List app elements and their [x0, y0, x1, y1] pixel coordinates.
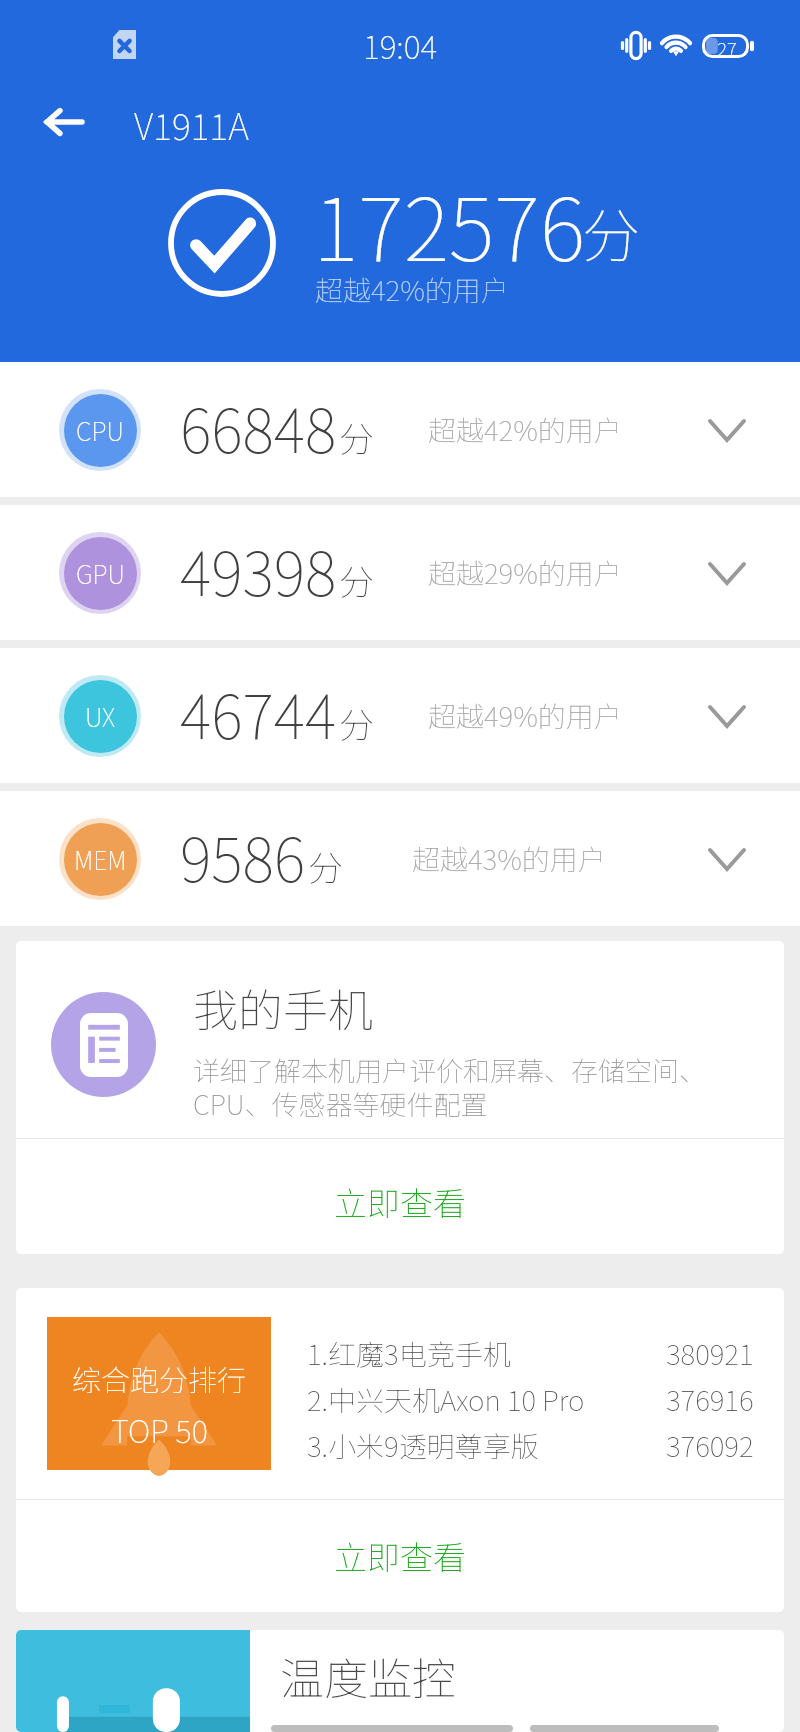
staticText: 380921	[666, 1333, 754, 1374]
staticText: 3.小米9透明尊享版	[307, 1425, 539, 1466]
button[interactable]: Expand	[682, 385, 772, 475]
staticText: 27	[717, 34, 737, 58]
staticText: 376916	[666, 1379, 754, 1420]
staticText: 分	[339, 554, 375, 605]
staticText: 172576	[313, 160, 585, 286]
staticText: 分	[339, 697, 375, 748]
staticText: 19:04	[363, 22, 438, 68]
staticText: MEM	[74, 841, 127, 877]
button[interactable]: MEM	[0, 791, 800, 926]
button[interactable]: 立即查看	[16, 1139, 784, 1254]
staticText: 超越49%的用户	[428, 695, 622, 736]
staticText: 1.红魔3电竞手机	[307, 1333, 511, 1374]
staticText: 分	[582, 190, 641, 274]
button[interactable]: CPU	[0, 362, 800, 497]
staticText: 49398	[180, 526, 337, 613]
staticText: 立即查看	[334, 1178, 466, 1226]
staticText: 46744	[180, 669, 337, 756]
staticText: 9586	[180, 812, 306, 899]
button[interactable]: Expand	[682, 528, 772, 618]
staticText: 超越43%的用户	[412, 838, 606, 879]
button[interactable]: UX	[0, 648, 800, 783]
staticText: V1911A	[134, 98, 249, 150]
button[interactable]: Expand	[682, 814, 772, 904]
staticText: GPU	[76, 555, 125, 591]
staticText: 我的手机	[193, 975, 374, 1040]
staticText: 376092	[666, 1425, 754, 1466]
staticText: CPU	[76, 412, 124, 448]
staticText: 超越42%的用户	[315, 269, 509, 310]
staticText: 分	[308, 840, 344, 891]
button[interactable]: GPU	[0, 505, 800, 640]
staticText: 综合跑分排行	[72, 1357, 247, 1399]
button[interactable]: Back	[23, 82, 103, 162]
staticText: UX	[85, 698, 116, 734]
staticText: 详细了解本机用户评价和屏幕、存储空间、 CPU、传感器等硬件配置	[193, 1050, 706, 1123]
button[interactable]: Expand	[682, 671, 772, 761]
staticText: 超越42%的用户	[428, 409, 622, 450]
staticText: 66848	[180, 383, 337, 470]
staticText: 温度监控	[280, 1644, 456, 1708]
staticText: TOP 50	[111, 1407, 208, 1452]
staticText: 超越29%的用户	[428, 552, 622, 593]
button[interactable]: 温度监控	[16, 1630, 784, 1732]
staticText: 2.中兴天机Axon 10 Pro	[307, 1379, 585, 1420]
staticText: 分	[339, 411, 375, 462]
staticText: 立即查看	[334, 1532, 466, 1580]
button[interactable]: 立即查看	[16, 1500, 784, 1612]
